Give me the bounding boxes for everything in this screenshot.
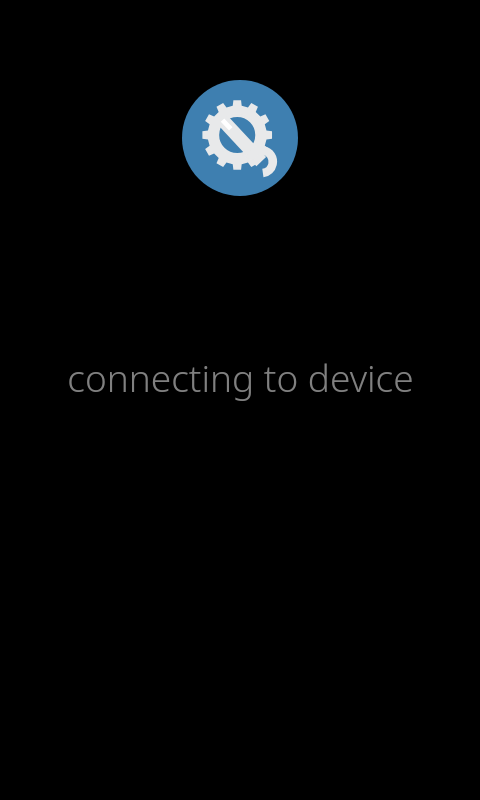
staticText: connecting to device <box>67 352 414 402</box>
